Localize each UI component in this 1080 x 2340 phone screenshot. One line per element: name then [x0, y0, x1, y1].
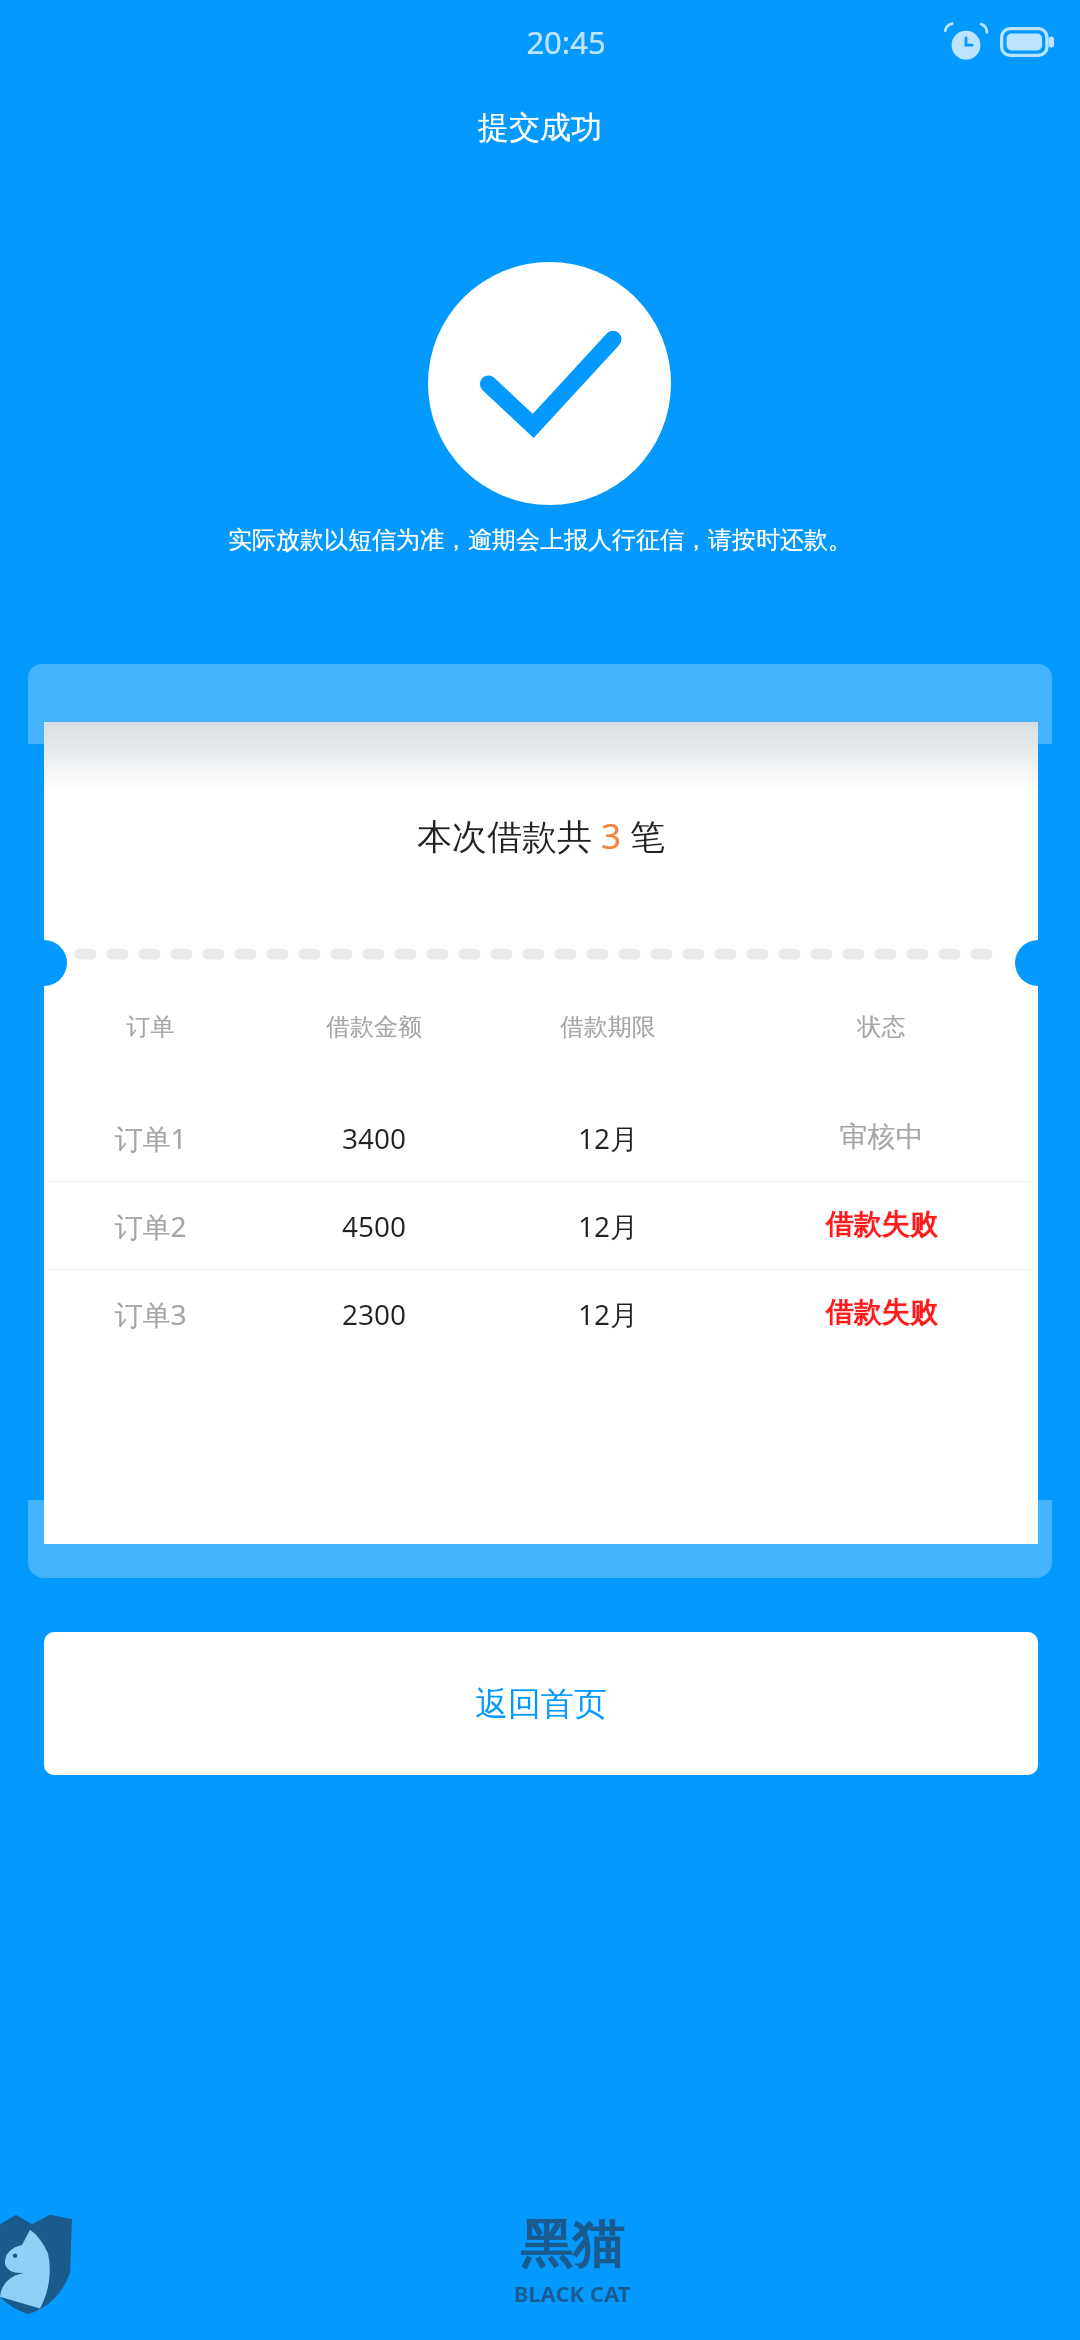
staticText: 订单2 — [44, 1207, 257, 1245]
staticText: 3400 — [257, 1119, 491, 1157]
staticText: 返回首页 — [44, 1683, 1038, 1725]
staticText: 提交成功 — [0, 108, 1080, 147]
button[interactable]: 订单3 — [44, 1270, 1038, 1357]
staticText: 订单 — [44, 1012, 257, 1042]
staticText: 12月 — [491, 1119, 725, 1157]
staticText: 借款失败 — [725, 1207, 1038, 1242]
staticText: 借款金额 — [257, 1012, 491, 1042]
staticText: BLACK CAT — [86, 2278, 1058, 2308]
staticText: 4500 — [257, 1207, 491, 1245]
staticText: 订单3 — [44, 1295, 257, 1333]
staticText: 借款期限 — [491, 1012, 725, 1042]
staticText: 实际放款以短信为准，逾期会上报人行征信，请按时还款。 — [150, 525, 930, 555]
other: Battery — [1000, 27, 1054, 57]
button[interactable]: 订单1 — [44, 1094, 1038, 1181]
staticText: 状态 — [725, 1012, 1038, 1042]
staticText: 黑猫 — [86, 2212, 1058, 2278]
staticText: 订单1 — [44, 1119, 257, 1157]
staticText: 2300 — [257, 1295, 491, 1333]
staticText: 12月 — [491, 1295, 725, 1333]
staticText: 借款失败 — [725, 1295, 1038, 1330]
button[interactable]: 返回首页 — [44, 1632, 1038, 1775]
staticText: 本次借款共 3 笔 — [44, 812, 1038, 860]
other: Alarm — [946, 22, 986, 62]
staticText: 12月 — [491, 1207, 725, 1245]
button[interactable]: 订单2 — [44, 1182, 1038, 1269]
staticText: 审核中 — [725, 1119, 1038, 1154]
staticText: 20:45 — [26, 21, 1080, 63]
